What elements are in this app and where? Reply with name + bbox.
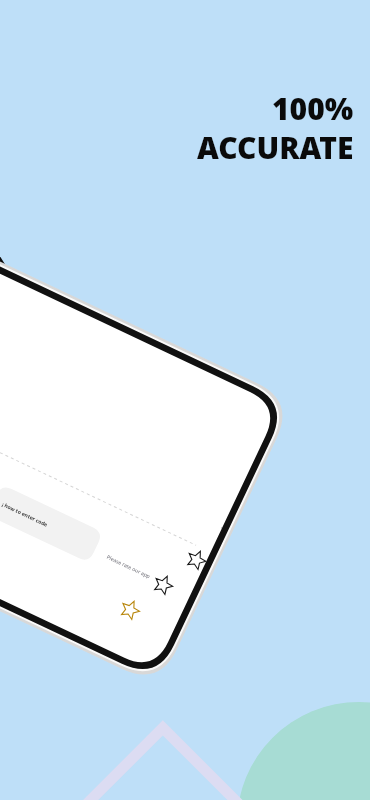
button[interactable]: 100% Accurate app promo bbox=[0, 0, 370, 800]
